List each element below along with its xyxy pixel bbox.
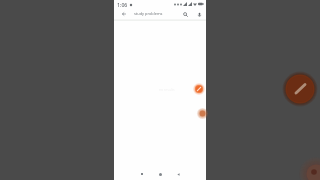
button[interactable]: Home (155, 169, 165, 179)
button[interactable]: Back (173, 169, 183, 179)
button[interactable]: Voice search (195, 10, 203, 18)
button[interactable]: Back (120, 10, 127, 17)
button[interactable]: Compose (192, 82, 206, 96)
staticText: study problems (134, 11, 163, 16)
button[interactable]: Recents (137, 169, 147, 179)
button[interactable]: Search (181, 10, 189, 18)
staticText: 1:06 (117, 1, 128, 8)
